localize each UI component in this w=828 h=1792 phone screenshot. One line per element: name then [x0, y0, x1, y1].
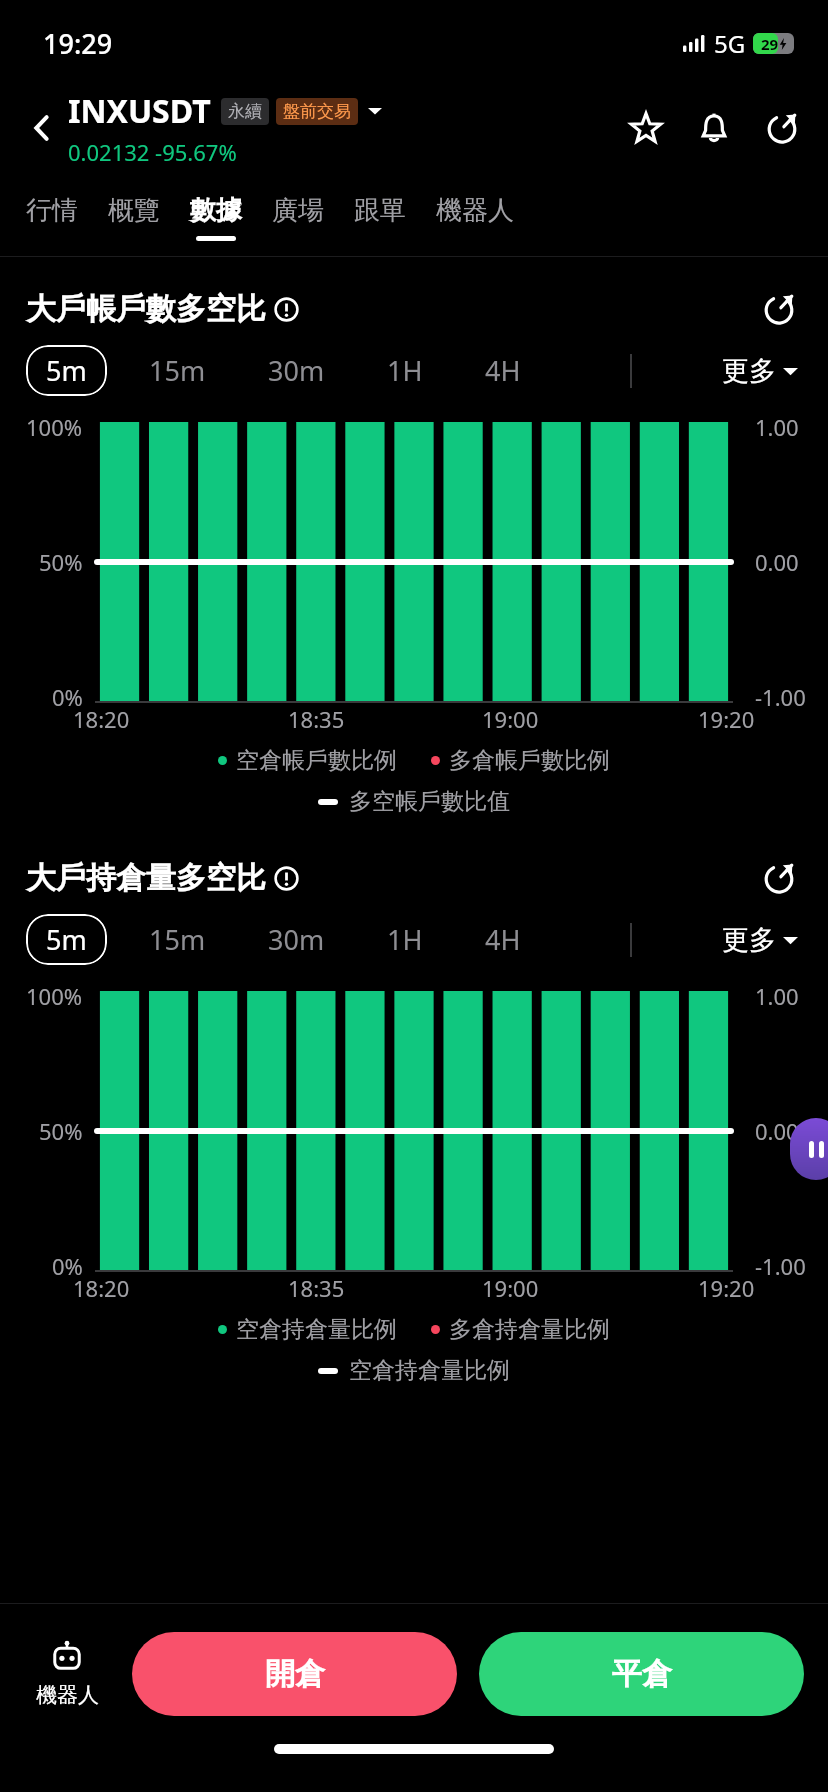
staticText: 空倉持倉量比例: [349, 1356, 510, 1385]
staticText: 空倉帳戶數比例: [236, 746, 397, 775]
button[interactable]: 跟單: [354, 178, 406, 256]
staticText: 18:20: [73, 704, 130, 734]
button[interactable]: 15m: [129, 914, 226, 965]
staticText: 15m: [149, 921, 206, 958]
staticText: 5G: [714, 27, 746, 60]
button[interactable]: 行情: [26, 178, 78, 256]
staticText: 1.00: [755, 981, 799, 1011]
staticText: 15m: [149, 352, 206, 389]
button[interactable]: 數據: [190, 178, 242, 256]
staticText: 18:20: [73, 1273, 130, 1303]
staticText: 大戶持倉量多空比: [26, 859, 266, 897]
staticText: 行情: [26, 194, 78, 227]
button[interactable]: 5m: [26, 914, 107, 965]
staticText: 0%: [52, 1251, 83, 1281]
button[interactable]: 更多: [722, 923, 802, 957]
staticText: 永續: [228, 101, 262, 122]
staticText: 開倉: [265, 1655, 325, 1693]
staticText: 數據: [190, 194, 242, 227]
staticText: 0.02132 -95.67%: [68, 137, 237, 167]
button[interactable]: Expand chart: [756, 286, 802, 332]
button[interactable]: Favorite: [622, 104, 670, 152]
staticText: -1.00: [755, 682, 806, 712]
staticText: 概覽: [108, 194, 160, 227]
button[interactable]: 大戶持倉量多空比: [26, 859, 299, 897]
staticText: INXUSDT: [68, 89, 211, 133]
staticText: 18:35: [288, 1273, 345, 1303]
button[interactable]: 更多: [722, 354, 802, 388]
button[interactable]: 機器人: [436, 178, 514, 256]
staticText: 平倉: [612, 1655, 672, 1693]
button[interactable]: 30m: [248, 345, 345, 396]
button[interactable]: Share: [758, 104, 806, 152]
staticText: 更多: [722, 354, 776, 388]
button[interactable]: 開倉: [132, 1632, 457, 1716]
staticText: 5m: [46, 352, 87, 389]
staticText: 19:00: [482, 1273, 539, 1303]
staticText: 50%: [39, 547, 83, 577]
staticText: 0.00: [755, 547, 799, 577]
staticText: 100%: [26, 981, 83, 1011]
staticText: 多倉帳戶數比例: [449, 746, 610, 775]
staticText: 空倉持倉量比例: [236, 1315, 397, 1344]
staticText: 0.00: [755, 1116, 799, 1146]
staticText: 4H: [485, 352, 521, 389]
staticText: 4H: [485, 921, 521, 958]
button[interactable]: 1H: [367, 345, 443, 396]
staticText: 0%: [52, 682, 83, 712]
button[interactable]: 平倉: [479, 1632, 804, 1716]
button[interactable]: Alerts: [690, 104, 738, 152]
staticText: 29: [761, 34, 779, 54]
staticText: 100%: [26, 412, 83, 442]
staticText: 機器人: [36, 1682, 99, 1708]
staticText: 5m: [46, 921, 87, 958]
button[interactable]: 15m: [129, 345, 226, 396]
button[interactable]: 30m: [248, 914, 345, 965]
button[interactable]: 5m: [26, 345, 107, 396]
staticText: 多倉持倉量比例: [449, 1315, 610, 1344]
button[interactable]: 機器人: [24, 1641, 110, 1708]
button[interactable]: 4H: [465, 914, 541, 965]
staticText: 多空帳戶數比值: [349, 787, 510, 816]
staticText: 50%: [39, 1116, 83, 1146]
staticText: 機器人: [436, 194, 514, 227]
staticText: 盤前交易: [283, 101, 351, 122]
staticText: 跟單: [354, 194, 406, 227]
staticText: 19:20: [698, 1273, 755, 1303]
staticText: 1H: [387, 352, 423, 389]
button[interactable]: 1H: [367, 914, 443, 965]
button[interactable]: 廣場: [272, 178, 324, 256]
staticText: 19:29: [43, 25, 113, 62]
staticText: 30m: [268, 921, 325, 958]
button[interactable]: 大戶帳戶數多空比: [26, 290, 299, 328]
button[interactable]: 4H: [465, 345, 541, 396]
button[interactable]: Assistant: [790, 1118, 828, 1180]
staticText: 1.00: [755, 412, 799, 442]
button[interactable]: 概覽: [108, 178, 160, 256]
button[interactable]: Expand chart: [756, 855, 802, 901]
staticText: 大戶帳戶數多空比: [26, 290, 266, 328]
staticText: 更多: [722, 923, 776, 957]
staticText: 19:00: [482, 704, 539, 734]
staticText: 19:20: [698, 704, 755, 734]
staticText: 30m: [268, 352, 325, 389]
staticText: 廣場: [272, 194, 324, 227]
staticText: 18:35: [288, 704, 345, 734]
staticText: 1H: [387, 921, 423, 958]
staticText: -1.00: [755, 1251, 806, 1281]
button[interactable]: Back: [14, 100, 70, 156]
